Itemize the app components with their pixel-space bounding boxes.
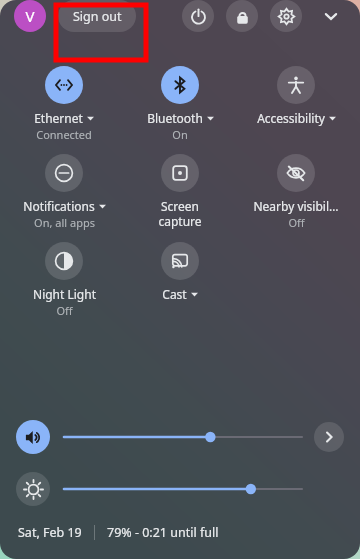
staticText: Sign out bbox=[73, 8, 122, 25]
button[interactable]: Sign out bbox=[58, 0, 136, 32]
staticText: Sat, Feb 19 bbox=[18, 524, 82, 541]
button[interactable]: Nearby visibil… bbox=[238, 152, 354, 230]
button[interactable] bbox=[64, 472, 302, 506]
staticText: Night Light bbox=[33, 286, 96, 302]
staticText: Cast bbox=[162, 286, 187, 302]
staticText: Notifications bbox=[23, 198, 95, 214]
button[interactable]: Volume bbox=[16, 420, 50, 454]
staticText: Off bbox=[288, 215, 305, 230]
staticText: Off bbox=[56, 303, 73, 318]
button[interactable]: Bluetooth bbox=[122, 64, 238, 142]
staticText: 79% - 0:21 until full bbox=[107, 524, 219, 541]
button[interactable]: Notifications bbox=[6, 152, 122, 230]
button[interactable]: Power bbox=[182, 0, 214, 32]
button[interactable]: Audio settings bbox=[314, 422, 344, 452]
staticText: Screen capture bbox=[158, 198, 202, 229]
button[interactable]: Collapse bbox=[316, 1, 346, 31]
button[interactable]: Sat, Feb 19 bbox=[18, 524, 82, 541]
button[interactable]: Accessibility bbox=[238, 64, 354, 126]
button[interactable]: 79% - 0:21 until full bbox=[107, 524, 219, 541]
staticText: Bluetooth bbox=[147, 110, 203, 126]
staticText: Ethernet bbox=[34, 110, 83, 126]
button[interactable]: Night Light bbox=[6, 240, 122, 318]
button[interactable] bbox=[64, 420, 302, 454]
button[interactable]: Ethernet bbox=[6, 64, 122, 142]
staticText: Nearby visibil… bbox=[253, 198, 339, 214]
button[interactable]: Screen capture bbox=[122, 152, 238, 229]
button[interactable]: Account bbox=[14, 0, 46, 32]
staticText: Connected bbox=[36, 127, 92, 142]
button[interactable]: Brightness bbox=[16, 472, 50, 506]
button[interactable]: Lock bbox=[226, 0, 258, 32]
staticText: Accessibility bbox=[257, 110, 325, 126]
staticText: On bbox=[172, 127, 188, 142]
staticText: V bbox=[25, 6, 35, 26]
button[interactable]: Settings bbox=[270, 0, 302, 32]
staticText: On, all apps bbox=[34, 215, 95, 230]
button[interactable]: Cast bbox=[122, 240, 238, 302]
